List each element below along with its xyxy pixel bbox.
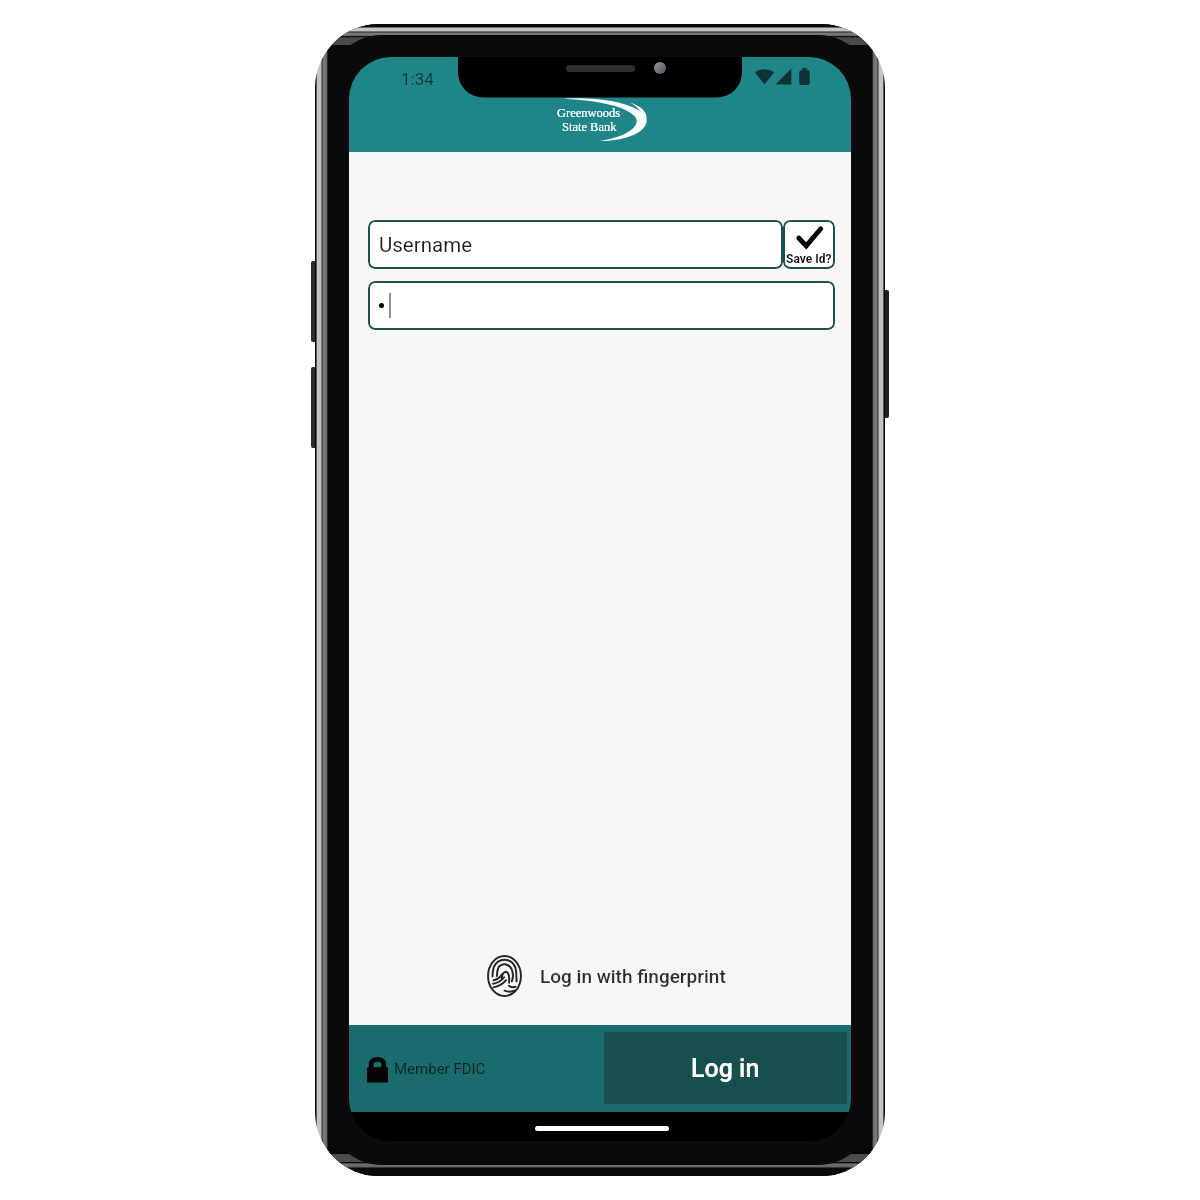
staticText: Username xyxy=(379,233,473,257)
button[interactable] xyxy=(368,281,835,330)
button[interactable]: Save Id xyxy=(783,220,835,269)
staticText: 1:34 xyxy=(401,69,434,89)
staticText: Member FDIC xyxy=(394,1060,486,1078)
staticText: Save Id? xyxy=(786,252,832,266)
button[interactable]: Member FDIC xyxy=(349,1025,851,1112)
staticText: State Bank xyxy=(562,120,617,134)
button[interactable]: Log in xyxy=(604,1032,847,1104)
staticText: Log in with fingerprint xyxy=(540,965,726,987)
staticText: Log in xyxy=(691,1054,760,1083)
button[interactable]: Log in with fingerprint xyxy=(486,955,726,997)
staticText: Greenwoods xyxy=(557,106,621,120)
button[interactable]: Username xyxy=(368,220,783,269)
